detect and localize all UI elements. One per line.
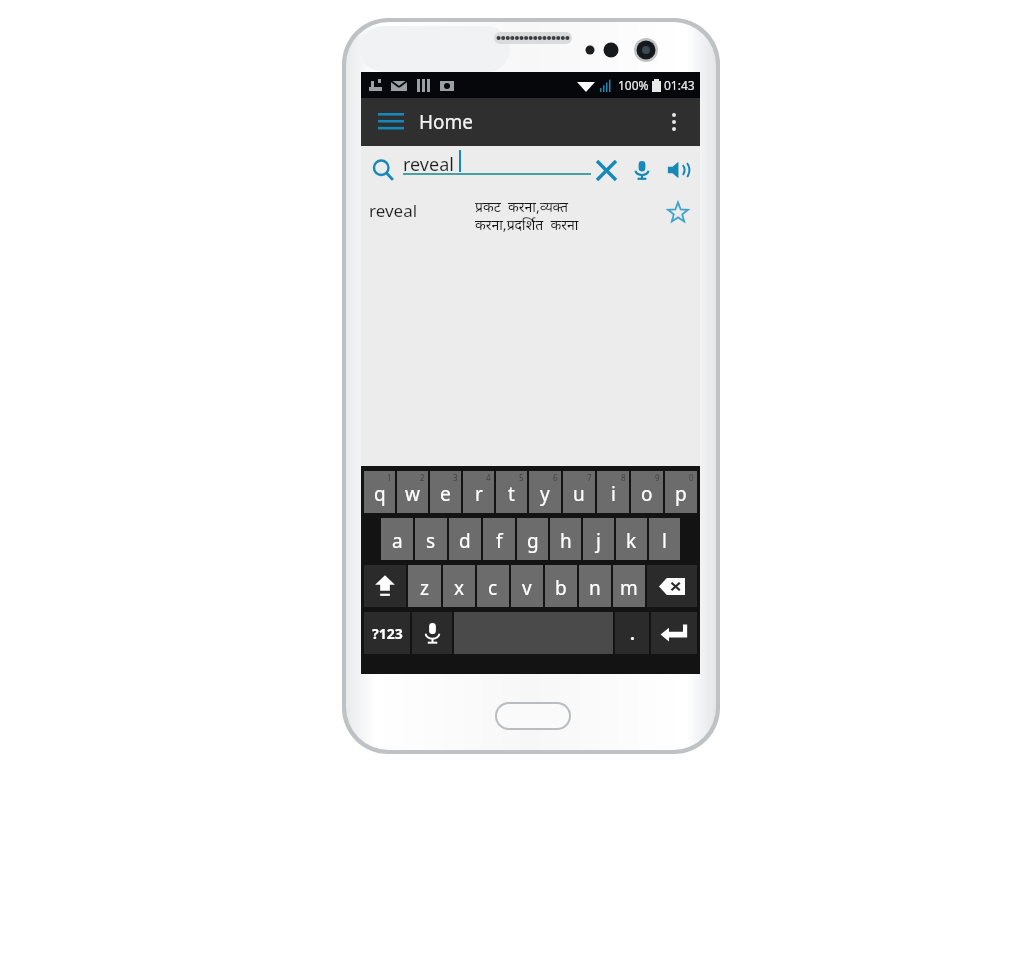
staticText: 3 xyxy=(453,472,458,483)
button[interactable]: s xyxy=(415,518,447,560)
button[interactable]: z xyxy=(408,565,441,607)
button[interactable]: c xyxy=(477,565,509,607)
button[interactable]: reveal xyxy=(361,194,700,244)
button[interactable]: u xyxy=(563,471,595,513)
staticText: 0 xyxy=(689,472,694,483)
staticText: 8 xyxy=(621,472,626,483)
staticText: w xyxy=(405,481,420,507)
button[interactable]: b xyxy=(545,565,577,607)
button[interactable]: Shift xyxy=(364,565,406,607)
staticText: i xyxy=(611,481,616,507)
staticText: q xyxy=(374,481,386,507)
button[interactable]: p xyxy=(665,471,697,513)
staticText: 6 xyxy=(553,472,558,483)
button[interactable]: f xyxy=(483,518,515,560)
button[interactable]: a xyxy=(381,518,413,560)
button[interactable]: Search xyxy=(366,153,400,187)
staticText: f xyxy=(496,528,503,554)
button[interactable]: r xyxy=(463,471,494,513)
button[interactable]: d xyxy=(449,518,481,560)
button[interactable]: o xyxy=(631,471,663,513)
staticText: reveal xyxy=(369,199,418,222)
staticText: प्रकट करना,व्यक्त करना,प्रदर्शित करना xyxy=(475,197,655,234)
staticText: 7 xyxy=(587,472,592,483)
staticText: . xyxy=(630,622,635,645)
staticText: t xyxy=(508,481,515,507)
button[interactable]: q xyxy=(364,471,395,513)
button[interactable]: ?123 xyxy=(364,612,410,654)
staticText: m xyxy=(620,575,638,601)
staticText: g xyxy=(527,528,539,554)
button[interactable]: Add to favourites xyxy=(662,196,694,228)
staticText: 5 xyxy=(519,472,524,483)
staticText: x xyxy=(454,575,465,601)
staticText: a xyxy=(392,528,403,554)
button[interactable]: Pronounce xyxy=(660,152,696,188)
staticText: k xyxy=(626,528,637,554)
button[interactable]: e xyxy=(430,471,461,513)
button[interactable]: g xyxy=(517,518,548,560)
staticText: 100% xyxy=(618,77,649,93)
staticText: d xyxy=(459,528,471,554)
staticText: l xyxy=(662,528,667,554)
button[interactable]: Voice input xyxy=(412,612,452,654)
button[interactable]: l xyxy=(649,518,680,560)
button[interactable]: v xyxy=(511,565,543,607)
staticText: 01:43 xyxy=(664,77,695,93)
button[interactable]: k xyxy=(616,518,647,560)
button[interactable]: h xyxy=(550,518,581,560)
staticText: r xyxy=(475,481,483,507)
button[interactable]: i xyxy=(597,471,629,513)
staticText: b xyxy=(555,575,567,601)
staticText: v xyxy=(522,575,532,601)
button[interactable]: Enter xyxy=(651,612,697,654)
staticText: ?123 xyxy=(372,624,403,643)
staticText: j xyxy=(596,528,601,554)
staticText: h xyxy=(560,528,572,554)
button[interactable]: . xyxy=(615,612,649,654)
button[interactable]: m xyxy=(613,565,645,607)
staticText: n xyxy=(589,575,601,601)
staticText: o xyxy=(641,481,653,507)
staticText: reveal xyxy=(403,152,454,177)
staticText: 4 xyxy=(486,472,491,483)
staticText: z xyxy=(420,575,429,601)
button[interactable]: n xyxy=(579,565,611,607)
button[interactable]: Voice search xyxy=(624,152,660,188)
staticText: 2 xyxy=(420,472,425,483)
button[interactable]: Backspace xyxy=(647,565,697,607)
button[interactable]: Home xyxy=(495,702,571,730)
button[interactable]: j xyxy=(583,518,614,560)
button[interactable]: Open navigation menu xyxy=(371,102,411,142)
staticText: c xyxy=(488,575,498,601)
button[interactable]: y xyxy=(529,471,561,513)
staticText: y xyxy=(540,481,550,507)
staticText: u xyxy=(573,481,585,507)
staticText: e xyxy=(440,481,451,507)
button[interactable]: More options xyxy=(654,102,694,142)
button[interactable]: t xyxy=(496,471,527,513)
staticText: 1 xyxy=(387,472,392,483)
button[interactable]: w xyxy=(397,471,428,513)
staticText: 9 xyxy=(655,472,660,483)
button[interactable]: Clear xyxy=(588,152,624,188)
button[interactable]: x xyxy=(443,565,475,607)
staticText: Home xyxy=(419,109,474,135)
staticText: s xyxy=(426,528,436,554)
staticText: p xyxy=(675,481,687,507)
